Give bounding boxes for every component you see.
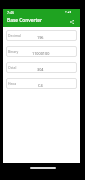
staticText: Decimal [8, 33, 21, 38]
staticText: 7:46 [7, 10, 15, 15]
staticText: Octal [8, 65, 17, 70]
staticText: Base Converter [7, 17, 43, 24]
staticText: Binary [8, 49, 19, 54]
button[interactable]: Binary [6, 46, 77, 57]
staticText: C4 [38, 83, 43, 88]
button[interactable]: Octal [6, 62, 77, 73]
button[interactable]: Hexa [6, 78, 77, 89]
button[interactable]: Share [68, 18, 76, 26]
staticText: Hexa [8, 81, 17, 86]
button[interactable]: Decimal [6, 30, 77, 41]
staticText: 196 [37, 35, 44, 40]
staticText: 304 [37, 67, 44, 72]
staticText: 11000100 [32, 51, 50, 56]
